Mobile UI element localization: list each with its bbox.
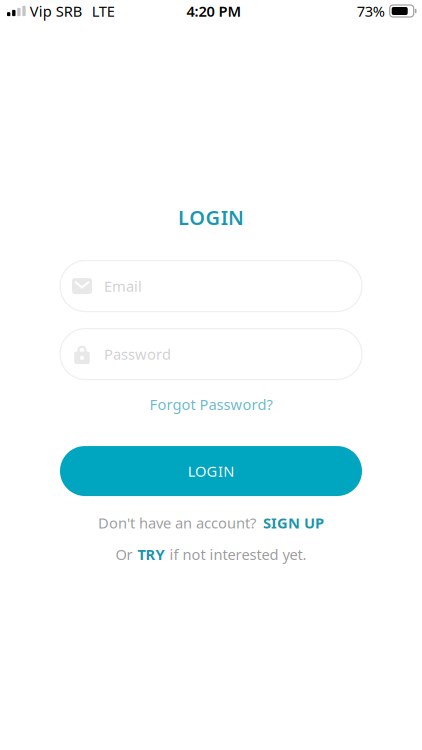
staticText: LOGIN	[178, 204, 244, 231]
staticText: Email	[104, 276, 142, 296]
staticText: Don't have an account?	[98, 513, 256, 532]
staticText: Forgot Password?	[149, 395, 272, 414]
staticText: LTE	[92, 1, 115, 21]
staticText: SIGN UP	[263, 513, 324, 532]
staticText: if not interested yet.	[169, 544, 306, 564]
button[interactable]: TRY	[137, 544, 164, 564]
button[interactable]: LOGIN	[60, 446, 362, 496]
staticText: TRY	[137, 544, 164, 564]
staticText: LOGIN	[188, 461, 234, 481]
button[interactable]: SIGN UP	[263, 513, 324, 532]
staticText: 4:20 PM	[186, 1, 241, 21]
staticText: 73%	[357, 1, 385, 21]
staticText: Password	[104, 344, 171, 364]
staticText: Or	[115, 544, 132, 564]
button[interactable]: Forgot Password?	[149, 395, 272, 414]
staticText: Vip SRB	[30, 1, 83, 21]
